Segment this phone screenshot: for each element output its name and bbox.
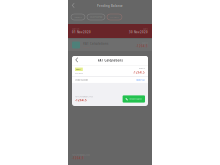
button[interactable]: LAST MONTH xyxy=(107,14,122,20)
staticText: Date To xyxy=(143,28,148,30)
staticText: INV-011 xyxy=(76,68,81,70)
staticText: Date From xyxy=(72,28,79,30)
staticText: Request Balance xyxy=(129,98,142,100)
staticText: -1264.5 xyxy=(75,98,87,102)
staticText: -1264.5 xyxy=(133,71,145,74)
staticText: VIEW DETAILS xyxy=(136,79,145,81)
staticText: Balance xyxy=(139,68,145,69)
staticText: 01 Nov 2020 xyxy=(72,30,91,34)
staticText: VAT Calculations xyxy=(83,42,108,45)
staticText: Show breakdown xyxy=(75,79,88,81)
button[interactable]: Request Balance xyxy=(123,95,145,103)
button[interactable]: THIS MONTH xyxy=(71,14,85,20)
staticText: -1264.5 xyxy=(136,44,148,48)
button[interactable]: Show breakdown xyxy=(72,77,148,83)
staticText: TOTAL PENDING BALANCE xyxy=(75,96,93,98)
button[interactable]: SELECT CUSTOM xyxy=(87,14,105,20)
staticText: THIS MONTH xyxy=(74,16,82,18)
staticText: LAST MONTH xyxy=(110,16,119,18)
staticText: Pending Balance xyxy=(97,4,123,8)
button[interactable]: Back xyxy=(73,56,82,65)
staticText: VAT Calculations xyxy=(97,59,122,62)
staticText: 30 Nov 2020 xyxy=(129,30,148,34)
button[interactable]: Back xyxy=(70,1,78,11)
staticText: -1264.5 xyxy=(72,156,84,160)
staticText: 04/11/2020 xyxy=(75,73,83,74)
button[interactable]: VAT Calculations xyxy=(68,39,152,51)
